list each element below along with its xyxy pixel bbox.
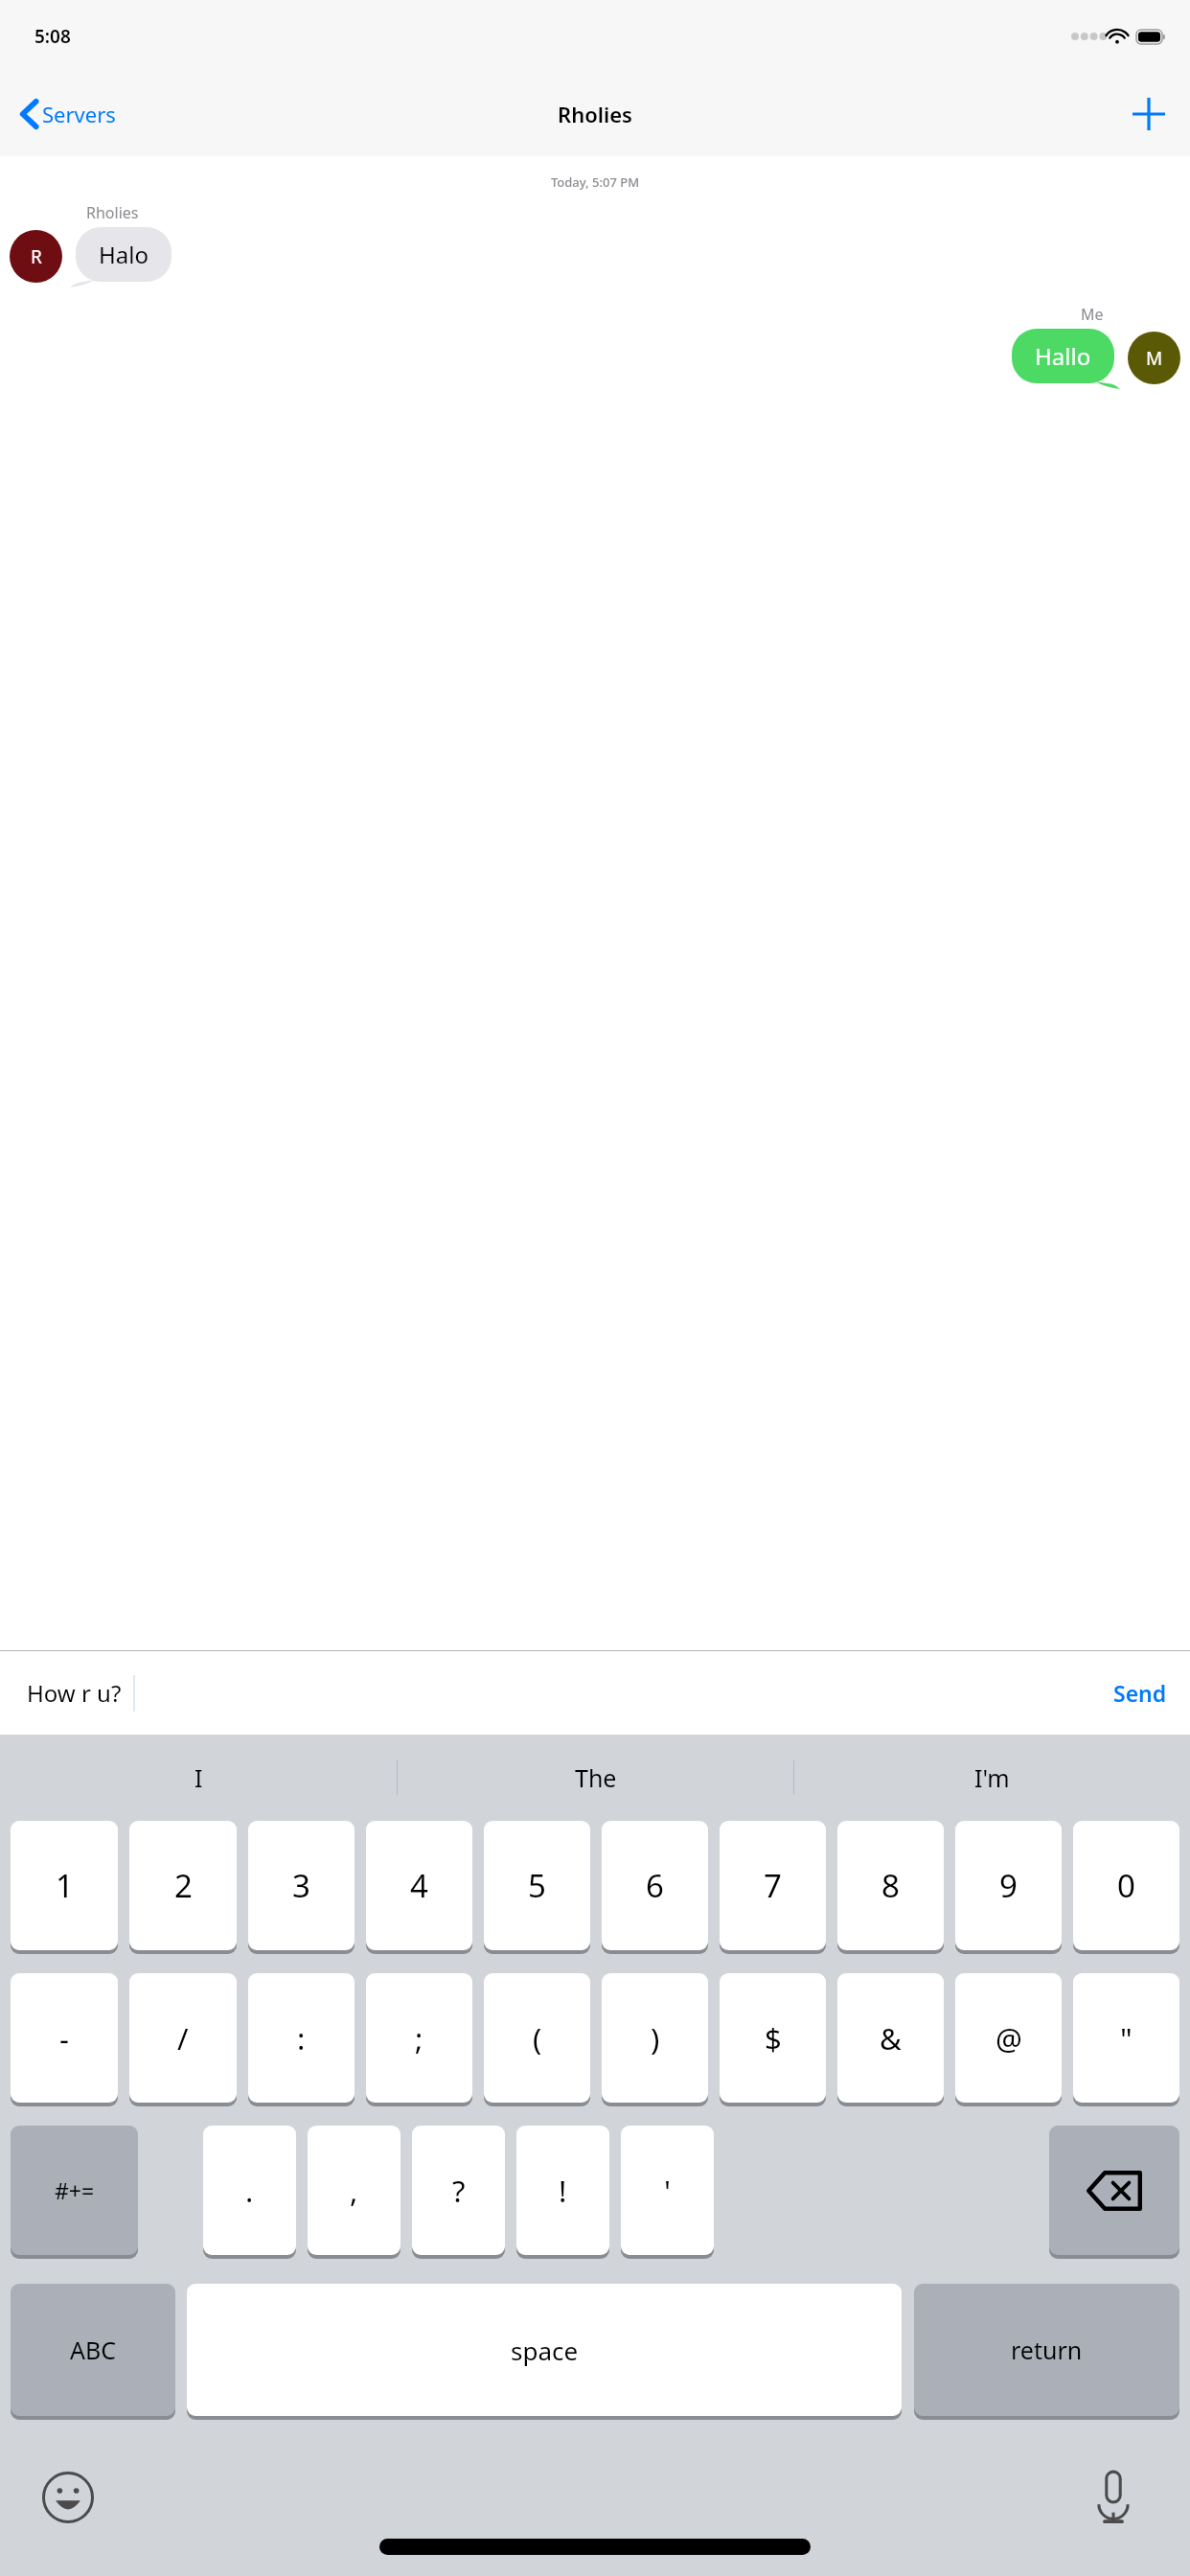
staticText: 0: [1117, 1864, 1135, 1907]
staticText: I: [195, 1761, 203, 1794]
button[interactable]: 4: [366, 1821, 472, 1950]
staticText: I'm: [974, 1761, 1010, 1794]
button[interactable]: /: [129, 1973, 237, 2103]
staticText: &: [880, 2018, 902, 2058]
button[interactable]: 5: [484, 1821, 590, 1950]
button[interactable]: Hallo: [1012, 329, 1114, 383]
staticText: Send: [1113, 1678, 1167, 1708]
button[interactable]: Send: [1090, 1665, 1190, 1721]
staticText: -: [59, 2018, 69, 2058]
button[interactable]: #+=: [11, 2126, 138, 2255]
button[interactable]: -: [11, 1973, 118, 2103]
staticText: 5:08: [34, 24, 71, 49]
button[interactable]: :: [248, 1973, 355, 2103]
button[interactable]: .: [203, 2126, 296, 2255]
button[interactable]: 2: [129, 1821, 237, 1950]
button[interactable]: &: [837, 1973, 944, 2103]
staticText: Servers: [42, 100, 116, 128]
button[interactable]: 8: [837, 1821, 944, 1950]
staticText: space: [511, 2334, 579, 2367]
staticText: ": [1120, 2018, 1133, 2058]
staticText: 6: [646, 1864, 664, 1907]
button[interactable]: ?: [412, 2126, 505, 2255]
button[interactable]: ;: [366, 1973, 472, 2103]
button[interactable]: Delete: [1049, 2126, 1179, 2255]
staticText: /: [177, 2018, 189, 2058]
button[interactable]: 6: [602, 1821, 708, 1950]
button[interactable]: @: [955, 1973, 1062, 2103]
button[interactable]: (: [484, 1973, 590, 2103]
staticText: Today, 5:07 PM: [0, 173, 1190, 191]
staticText: ?: [452, 2171, 466, 2211]
staticText: Me: [1081, 304, 1104, 325]
button[interactable]: 9: [955, 1821, 1062, 1950]
staticText: Hallo: [1035, 340, 1091, 372]
staticText: Rholies: [558, 100, 632, 128]
button[interactable]: 0: [1073, 1821, 1179, 1950]
staticText: ABC: [70, 2334, 117, 2366]
button[interactable]: ": [1073, 1973, 1179, 2103]
button[interactable]: ABC: [11, 2284, 175, 2416]
staticText: .: [245, 2171, 254, 2211]
button[interactable]: 7: [720, 1821, 826, 1950]
staticText: 2: [174, 1864, 193, 1907]
staticText: ;: [415, 2018, 423, 2058]
button[interactable]: Halo: [76, 227, 172, 282]
button[interactable]: !: [516, 2126, 609, 2255]
button[interactable]: 3: [248, 1821, 355, 1950]
button[interactable]: M: [1128, 332, 1180, 384]
staticText: 7: [764, 1864, 782, 1907]
staticText: $: [765, 2018, 782, 2058]
staticText: :: [297, 2018, 306, 2058]
button[interactable]: R: [10, 230, 62, 283]
button[interactable]: return: [914, 2284, 1179, 2416]
button[interactable]: How r u?: [15, 1667, 133, 1718]
staticText: 4: [410, 1864, 428, 1907]
button[interactable]: 1: [11, 1821, 118, 1950]
staticText: R: [31, 244, 42, 269]
staticText: !: [559, 2171, 567, 2211]
button[interactable]: I: [0, 1735, 397, 1821]
staticText: 9: [999, 1864, 1018, 1907]
staticText: ': [664, 2171, 671, 2211]
button[interactable]: ,: [308, 2126, 400, 2255]
staticText: The: [575, 1761, 617, 1794]
staticText: Rholies: [86, 202, 139, 223]
staticText: Halo: [99, 239, 149, 270]
staticText: 8: [881, 1864, 900, 1907]
staticText: return: [1011, 2334, 1083, 2366]
button[interactable]: Emoji: [29, 2458, 107, 2537]
button[interactable]: The: [398, 1735, 793, 1821]
button[interactable]: $: [720, 1973, 826, 2103]
button[interactable]: Add: [1108, 86, 1190, 142]
staticText: (: [533, 2018, 542, 2058]
button[interactable]: ): [602, 1973, 708, 2103]
staticText: 1: [56, 1864, 74, 1907]
button[interactable]: Dictation: [1083, 2457, 1144, 2538]
staticText: 3: [292, 1864, 310, 1907]
staticText: ,: [350, 2171, 358, 2211]
staticText: M: [1146, 346, 1163, 371]
staticText: ): [651, 2018, 660, 2058]
button[interactable]: ': [621, 2126, 714, 2255]
button[interactable]: space: [187, 2284, 902, 2416]
staticText: How r u?: [27, 1677, 122, 1709]
staticText: #+=: [55, 2175, 95, 2205]
button[interactable]: Servers: [0, 92, 129, 136]
staticText: 5: [528, 1864, 546, 1907]
button[interactable]: I'm: [794, 1735, 1190, 1821]
staticText: @: [995, 2018, 1022, 2058]
